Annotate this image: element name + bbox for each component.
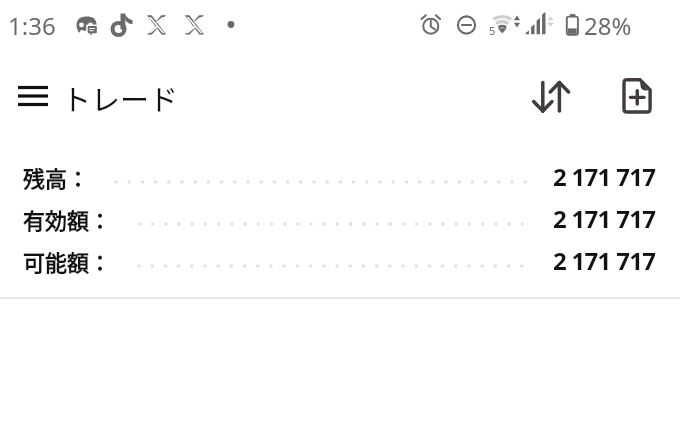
- button[interactable]: Menu: [6, 72, 60, 118]
- button[interactable]: Add note: [615, 71, 663, 121]
- staticText: 1:36: [8, 9, 56, 42]
- staticText: 5: [489, 23, 496, 38]
- button[interactable]: 有効額：: [0, 197, 680, 239]
- staticText: トレード: [62, 77, 179, 119]
- staticText: 2 171 717: [553, 202, 656, 235]
- staticText: 28%: [584, 9, 632, 42]
- button[interactable]: Sort: [524, 73, 576, 119]
- staticText: 2 171 717: [553, 244, 656, 277]
- staticText: 2 171 717: [553, 160, 656, 193]
- staticText: 可能額：: [23, 245, 112, 277]
- button[interactable]: 可能額：: [0, 239, 680, 281]
- staticText: 有効額：: [23, 203, 112, 235]
- button[interactable]: 残高：: [0, 155, 680, 197]
- staticText: 残高：: [23, 161, 90, 193]
